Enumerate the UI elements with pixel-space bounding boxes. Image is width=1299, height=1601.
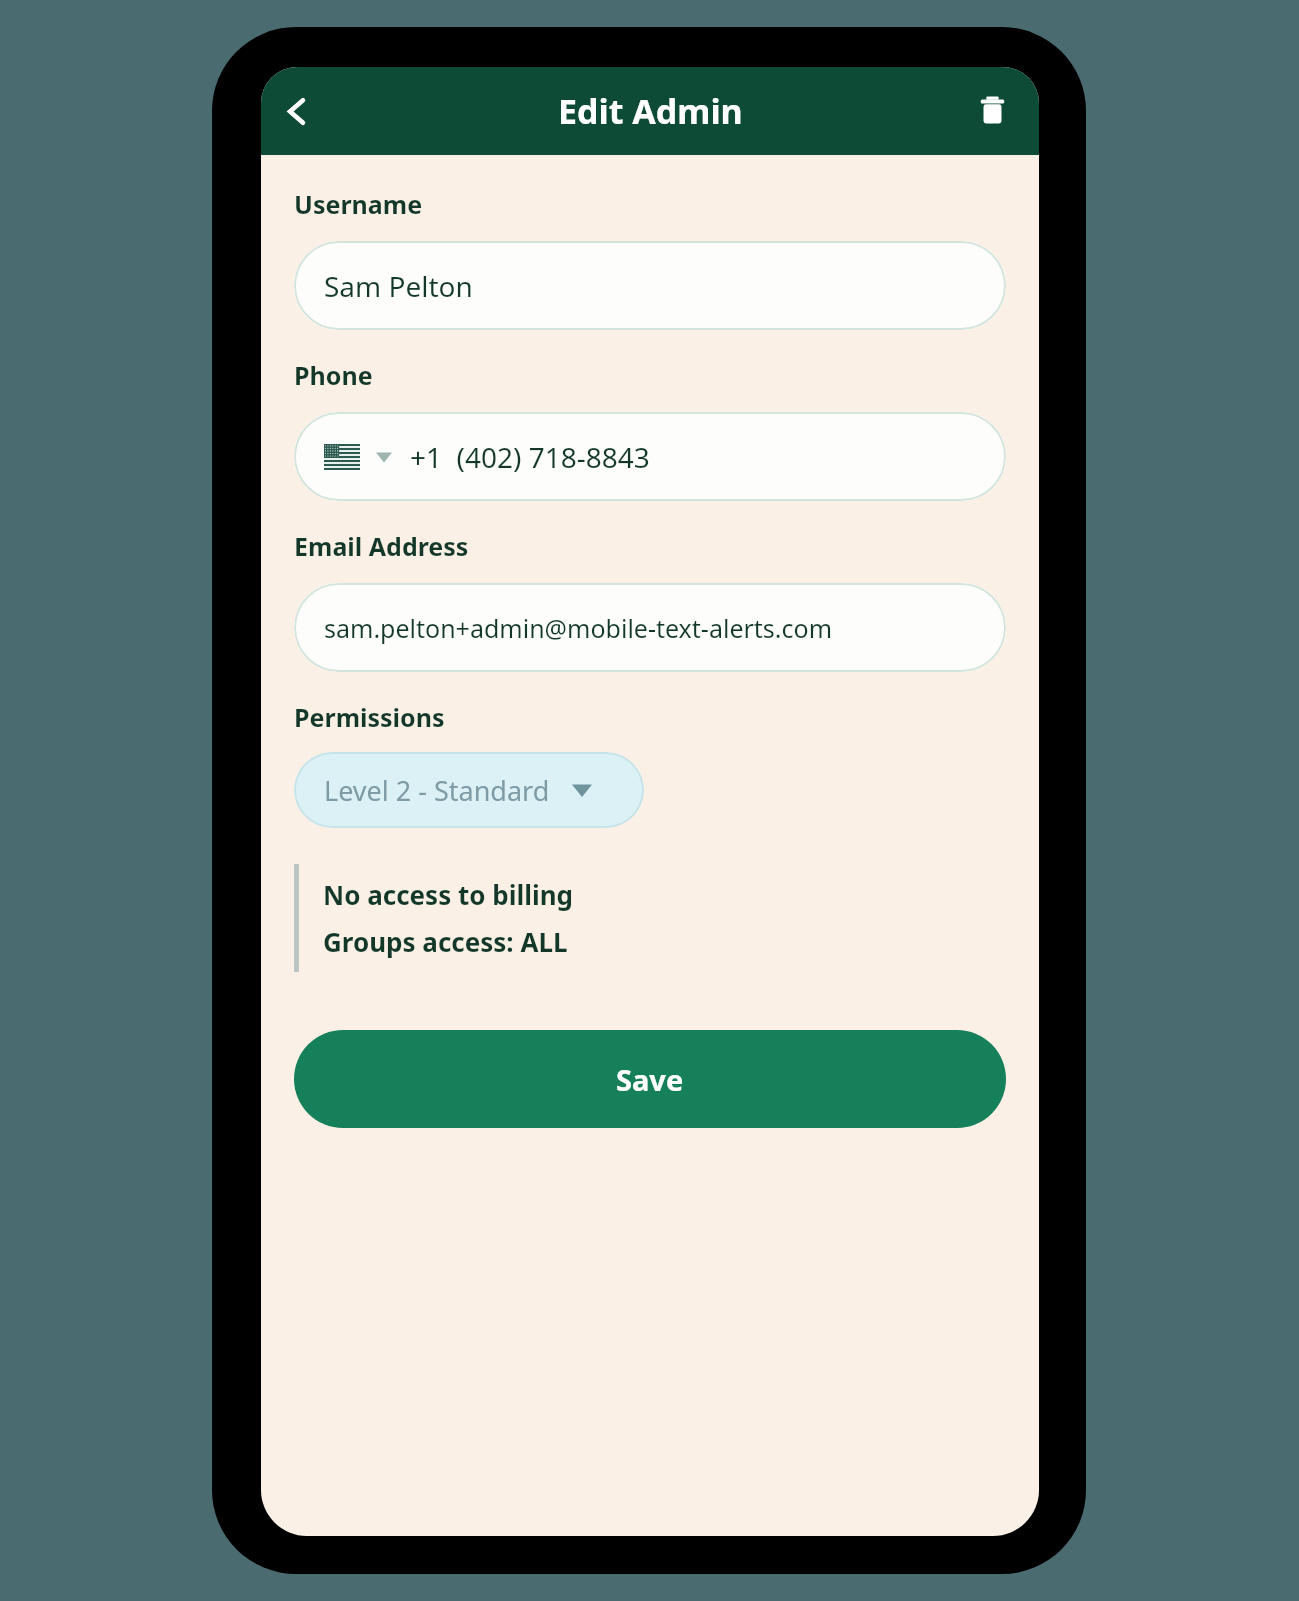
staticText: Sam Pelton [324, 267, 473, 305]
button[interactable]: Delete [965, 84, 1019, 138]
button[interactable]: Save [294, 1030, 1006, 1128]
button[interactable]: Back [267, 82, 325, 140]
staticText: sam.pelton+admin@mobile-text-alerts.com [324, 611, 833, 645]
staticText: Level 2 - Standard [324, 772, 550, 809]
button[interactable]: Level 2 - Standard [294, 752, 644, 828]
button[interactable]: Sam Pelton [294, 241, 1006, 330]
button[interactable]: sam.pelton+admin@mobile-text-alerts.com [294, 583, 1006, 672]
staticText: Permissions [294, 700, 445, 734]
staticText: Username [294, 187, 423, 221]
staticText: Edit Admin [558, 88, 743, 134]
staticText: +1 (402) 718-8843 [410, 438, 650, 476]
staticText: Phone [294, 358, 373, 392]
button[interactable]: +1 (402) 718-8843 [294, 412, 1006, 501]
staticText: Groups access: ALL [323, 924, 568, 959]
staticText: Save [616, 1060, 684, 1099]
staticText: No access to billing [323, 877, 574, 912]
staticText: Email Address [294, 529, 469, 563]
